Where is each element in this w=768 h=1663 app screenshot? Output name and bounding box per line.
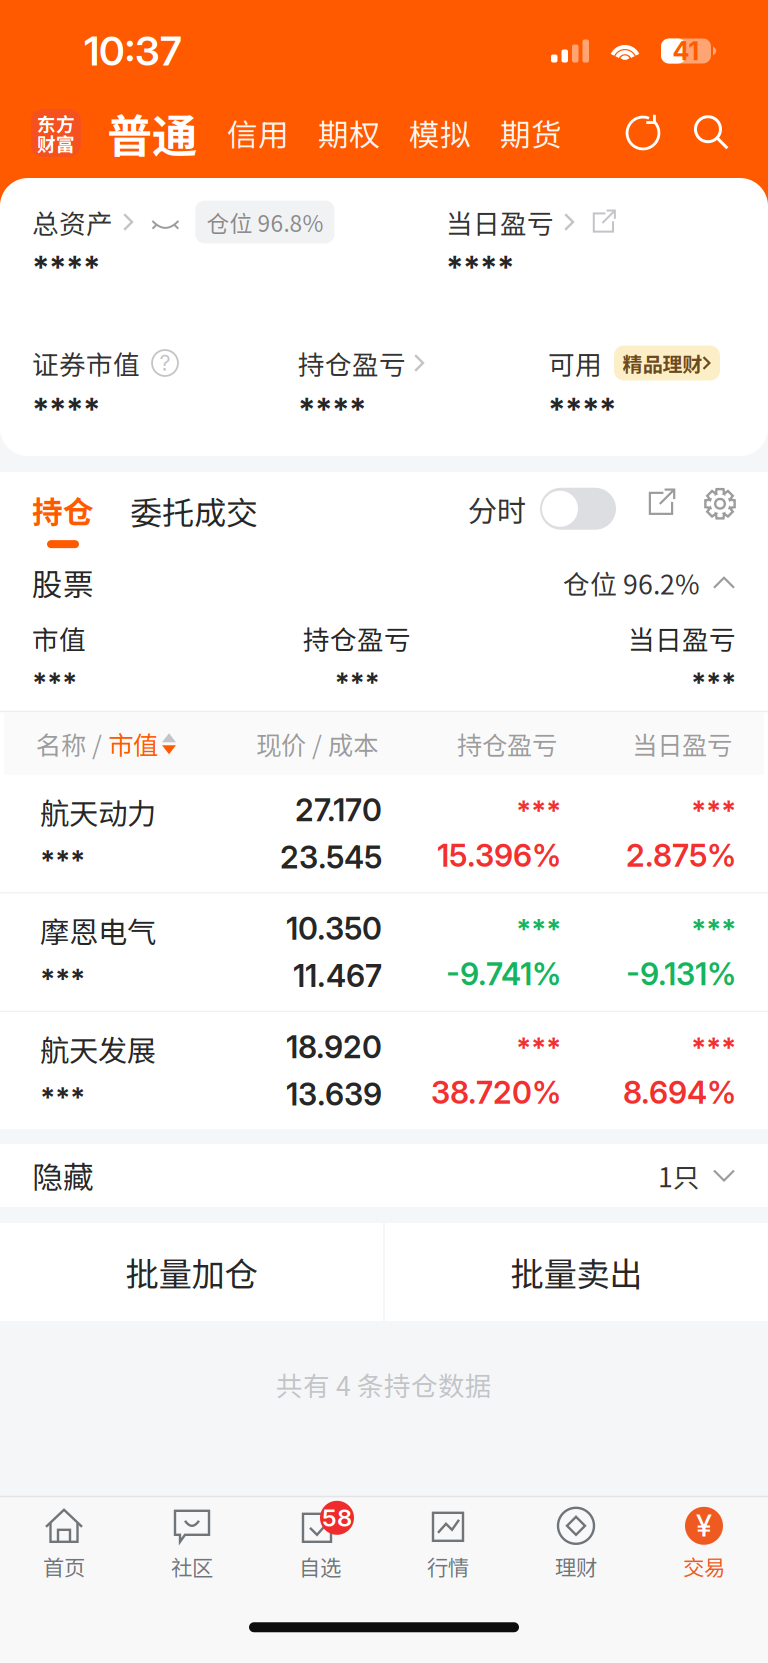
button[interactable]: 社区 [128,1497,256,1591]
staticText: 18.920 [286,1029,382,1066]
button[interactable]: 名称 / [36,725,210,762]
staticText: 持仓盈亏 [457,725,557,762]
button[interactable]: 当日盈亏 [446,203,736,241]
staticText: *** [691,793,736,827]
staticText: 当日盈亏 [446,203,554,241]
button[interactable]: 期货 [500,111,562,155]
staticText: 模拟 [409,111,471,155]
staticText: 现价 / 成本 [256,725,378,762]
staticText: **** [298,390,366,428]
staticText: 10:37 [84,27,182,75]
staticText: *** [40,1080,85,1114]
button[interactable]: 首页 [0,1497,128,1591]
button[interactable]: 信用 [227,111,289,155]
button[interactable]: 委托成交 [130,488,258,534]
staticText: 共有 4 条持仓数据 [276,1365,492,1404]
button[interactable]: 东方财富 [31,109,81,157]
staticText: 总资产 [32,203,113,241]
staticText: ? [159,350,170,376]
staticText: 东方 [37,109,75,136]
staticText: 2.875% [626,837,736,874]
button[interactable]: 设置 [704,488,736,520]
staticText: 股票 [32,560,94,605]
staticText: 批量卖出 [510,1248,642,1296]
staticText: 理财 [555,1551,597,1582]
staticText: 8.694% [623,1074,736,1111]
staticText: -9.131% [626,956,736,993]
staticText: 11.467 [293,957,382,994]
staticText: 仓位 96.8% [206,206,323,238]
staticText: 期权 [318,111,380,155]
staticText: *** [691,665,736,699]
staticText: 持仓盈亏 [303,619,411,657]
staticText: 23.545 [280,839,382,876]
button[interactable]: 58 [256,1497,384,1591]
staticText: 10.350 [286,910,382,947]
staticText: ¥ [696,1508,712,1544]
staticText: **** [32,390,100,428]
staticText: **** [446,248,514,286]
staticText: *** [40,843,85,877]
button[interactable]: 航天动力 [0,775,768,892]
staticText: 隐藏 [32,1153,94,1198]
staticText: *** [516,1030,561,1064]
staticText: 可用 [548,344,602,382]
staticText: 摩恩电气 [40,909,156,952]
button[interactable]: 期权 [318,111,380,155]
staticText: 航天发展 [40,1028,156,1070]
button[interactable]: 股票 [0,559,768,607]
staticText: 证券市值 [32,344,140,382]
staticText: 信用 [227,111,289,155]
button[interactable]: 持仓 [32,488,94,548]
staticText: 航天动力 [40,791,156,833]
button[interactable]: ¥ [640,1497,768,1591]
staticText: 财富 [37,129,75,156]
button[interactable]: 普通 [107,100,197,166]
staticText: *** [334,665,379,699]
staticText: 市值 [32,619,86,657]
staticText: 15.396% [437,837,561,874]
staticText: 委托成交 [130,488,258,534]
staticText: 市值 [108,725,158,762]
staticText: *** [516,793,561,827]
button[interactable]: 精品理财 [614,345,720,380]
staticText: 精品理财 [622,348,702,377]
staticText: 1只 [658,1156,700,1195]
button[interactable]: 刷新 [624,114,662,152]
button[interactable]: 航天发展 [0,1012,768,1129]
staticText: 持仓 [32,488,94,532]
staticText: *** [516,912,561,946]
staticText: 分时 [468,488,526,530]
staticText: 期货 [500,111,562,155]
button[interactable]: 批量加仓 [0,1223,383,1321]
staticText: *** [40,961,85,995]
staticText: 首页 [43,1551,85,1582]
button[interactable]: 摩恩电气 [0,894,768,1011]
staticText: *** [32,665,77,699]
button[interactable]: 批量卖出 [385,1223,768,1321]
button[interactable]: 理财 [512,1497,640,1591]
staticText: 自选 [299,1551,341,1582]
staticText: 58 [322,1503,352,1532]
staticText: 行情 [427,1551,469,1582]
staticText: 批量加仓 [125,1248,257,1296]
button[interactable]: 隐藏 [0,1144,768,1207]
button[interactable]: 模拟 [409,111,471,155]
staticText: 13.639 [286,1076,382,1113]
staticText: 仓位 96.2% [563,563,700,602]
button[interactable]: 行情 [384,1497,512,1591]
button[interactable]: 分时开关 [540,488,616,530]
staticText: 38.720% [431,1074,561,1111]
button[interactable]: 持仓盈亏 [298,344,548,382]
staticText: 名称 / [36,725,108,762]
button[interactable]: 分享 [646,488,676,518]
staticText: 当日盈亏 [632,725,732,762]
staticText: 普通 [107,100,197,166]
staticText: **** [548,390,616,428]
staticText: -9.741% [446,956,561,993]
staticText: **** [32,248,100,286]
staticText: 持仓盈亏 [298,344,406,382]
button[interactable]: 总资产 [32,201,446,243]
button[interactable]: 搜索 [692,114,730,152]
staticText: 社区 [171,1551,213,1582]
